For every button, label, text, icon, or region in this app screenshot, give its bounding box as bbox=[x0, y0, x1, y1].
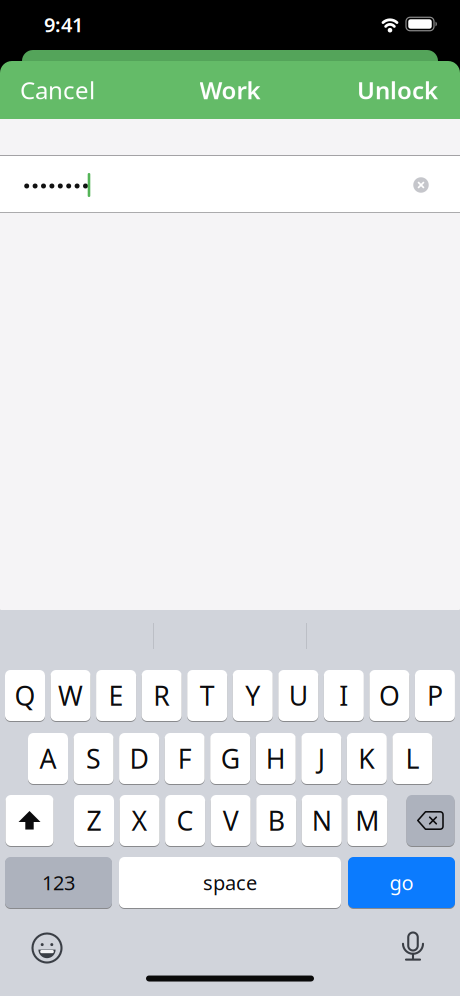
button[interactable]: Dictation bbox=[401, 931, 425, 965]
button[interactable]: P bbox=[415, 669, 455, 721]
button[interactable]: N bbox=[302, 794, 342, 846]
button[interactable]: T bbox=[187, 669, 227, 721]
button[interactable]: Emoji bbox=[30, 931, 64, 965]
button[interactable]: F bbox=[165, 732, 205, 784]
button[interactable]: K bbox=[347, 732, 387, 784]
staticText: 9:41 bbox=[44, 11, 83, 38]
button[interactable]: X bbox=[120, 794, 160, 846]
staticText: Unlock bbox=[357, 74, 438, 106]
staticText: A bbox=[39, 741, 56, 776]
button[interactable]: O bbox=[369, 669, 409, 721]
button[interactable]: W bbox=[50, 669, 90, 721]
staticText: D bbox=[130, 741, 149, 776]
staticText: R bbox=[153, 678, 170, 713]
staticText: C bbox=[177, 803, 194, 838]
button[interactable]: V bbox=[211, 794, 251, 846]
staticText: T bbox=[200, 678, 215, 713]
button[interactable]: Z bbox=[74, 794, 114, 846]
button[interactable]: J bbox=[301, 732, 341, 784]
button[interactable]: Clear text bbox=[407, 171, 435, 199]
staticText: N bbox=[312, 803, 332, 838]
staticText: Z bbox=[86, 803, 101, 838]
staticText: space bbox=[203, 869, 257, 896]
button[interactable]: E bbox=[96, 669, 136, 721]
staticText: Q bbox=[14, 678, 35, 713]
button[interactable]: Delete bbox=[406, 794, 454, 846]
staticText: I bbox=[339, 678, 348, 713]
staticText: U bbox=[289, 678, 308, 713]
staticText: G bbox=[221, 741, 240, 776]
button[interactable]: I bbox=[324, 669, 364, 721]
staticText: M bbox=[355, 803, 379, 838]
staticText: Y bbox=[245, 678, 260, 713]
button[interactable]: Q bbox=[5, 669, 45, 721]
button[interactable]: S bbox=[73, 732, 113, 784]
staticText: H bbox=[266, 741, 286, 776]
button[interactable]: Shift bbox=[5, 794, 53, 846]
staticText: F bbox=[178, 741, 192, 776]
button[interactable]: 123 bbox=[5, 856, 112, 908]
staticText: 123 bbox=[42, 869, 75, 896]
button[interactable]: Cancel bbox=[20, 74, 95, 106]
button[interactable]: space bbox=[119, 856, 341, 908]
button[interactable]: M bbox=[347, 794, 387, 846]
staticText: W bbox=[58, 678, 83, 713]
staticText: X bbox=[132, 803, 148, 838]
button[interactable]: C bbox=[165, 794, 205, 846]
button[interactable]: go bbox=[348, 856, 455, 908]
button[interactable]: L bbox=[392, 732, 432, 784]
staticText: E bbox=[109, 678, 124, 713]
staticText: L bbox=[405, 741, 419, 776]
staticText: S bbox=[86, 741, 101, 776]
button[interactable]: D bbox=[119, 732, 159, 784]
staticText: K bbox=[358, 741, 375, 776]
staticText: O bbox=[379, 678, 400, 713]
button[interactable]: U bbox=[278, 669, 318, 721]
button[interactable]: G bbox=[210, 732, 250, 784]
staticText: B bbox=[268, 803, 285, 838]
staticText: J bbox=[318, 741, 325, 776]
button[interactable]: A bbox=[28, 732, 68, 784]
button[interactable]: Y bbox=[233, 669, 273, 721]
button[interactable]: Unlock bbox=[357, 74, 438, 106]
button[interactable]: Password bbox=[0, 156, 460, 212]
button[interactable]: B bbox=[256, 794, 296, 846]
button[interactable]: H bbox=[256, 732, 296, 784]
staticText: P bbox=[427, 678, 443, 713]
staticText: Cancel bbox=[20, 74, 95, 106]
staticText: go bbox=[389, 869, 413, 896]
staticText: V bbox=[223, 803, 239, 838]
staticText: Work bbox=[199, 74, 260, 106]
button[interactable]: R bbox=[142, 669, 182, 721]
